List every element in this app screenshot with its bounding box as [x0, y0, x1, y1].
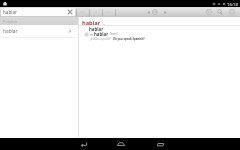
button[interactable]: Next — [104, 8, 112, 16]
staticText: vi — [90, 32, 93, 37]
button[interactable]: Bookmarks — [78, 8, 86, 16]
button[interactable]: History — [205, 8, 213, 16]
staticText: (con) — [110, 32, 118, 36]
button[interactable]: Previous — [91, 8, 99, 16]
staticText: v — [103, 23, 105, 27]
button[interactable]: Swap to — [144, 8, 152, 16]
staticText: hablar — [82, 19, 101, 27]
button[interactable]: Clear search — [67, 9, 73, 15]
staticText: hablar — [3, 28, 18, 35]
button[interactable]: hablar — [0, 25, 78, 37]
staticText: ¿Hablas español? — [90, 37, 111, 41]
staticText: hablar — [94, 31, 109, 37]
staticText: Do you speak Spanish? — [113, 37, 145, 41]
button[interactable]: Recent apps — [154, 138, 166, 150]
button[interactable]: Settings — [228, 8, 236, 16]
button[interactable]: Languages — [151, 8, 159, 16]
staticText: hablar — [3, 9, 17, 15]
staticText: hablar — [89, 26, 104, 32]
button[interactable]: Back — [77, 138, 89, 150]
staticText: 16:18 — [227, 1, 238, 7]
button[interactable]: hablar — [1, 8, 75, 17]
staticText: Palabra — [3, 19, 18, 24]
button[interactable]: Search — [216, 8, 224, 16]
button[interactable]: Swap from — [161, 8, 169, 16]
button[interactable]: Home — [115, 138, 127, 150]
